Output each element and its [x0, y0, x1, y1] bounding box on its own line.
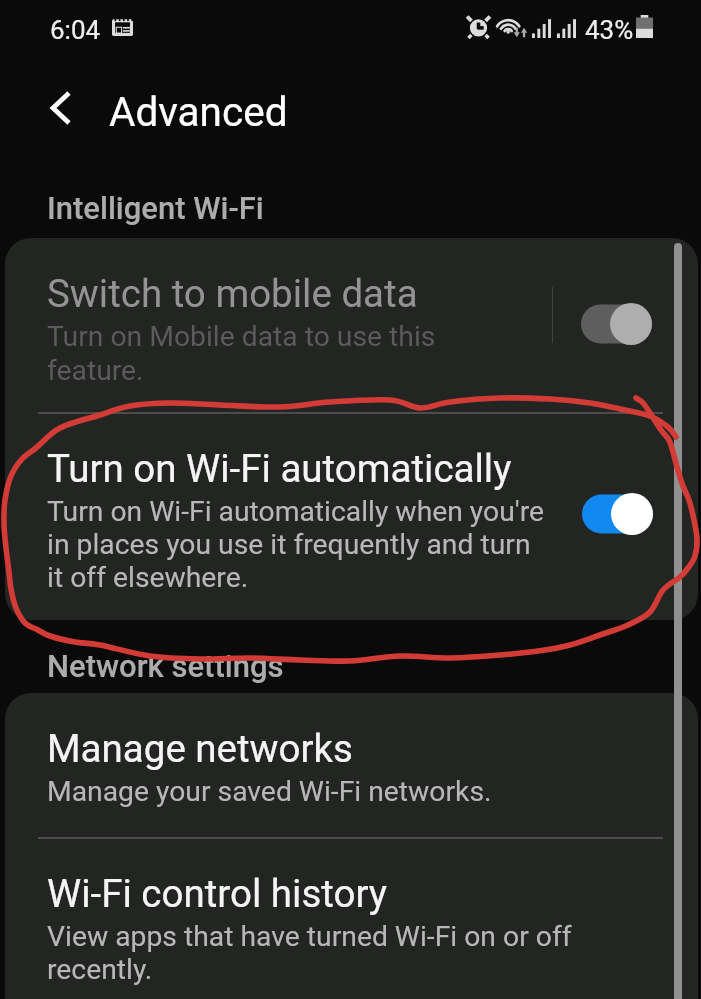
staticText: Network settings [47, 648, 284, 684]
staticText: Wi-Fi control history [47, 871, 388, 916]
button[interactable]: Back [35, 82, 87, 134]
staticText: Advanced [109, 88, 288, 135]
button[interactable]: Switch to mobile data [5, 238, 698, 412]
button[interactable]: Switch on [582, 493, 653, 535]
staticText: Intelligent Wi-Fi [47, 190, 264, 226]
staticText: Switch to mobile data [47, 271, 418, 316]
staticText: 43% [585, 15, 634, 45]
staticText: Turn on Mobile data to use this feature. [47, 320, 436, 387]
button[interactable]: Wi-Fi control history [5, 838, 698, 999]
staticText: Turn on Wi-Fi automatically when you're … [47, 495, 545, 594]
button[interactable]: Turn on Wi-Fi automatically [5, 413, 698, 620]
staticText: Manage networks [47, 726, 353, 771]
staticText: View apps that have turned Wi-Fi on or o… [47, 920, 572, 986]
staticText: Turn on Wi-Fi automatically [47, 446, 512, 491]
staticText: Manage your saved Wi-Fi networks. [47, 775, 492, 808]
staticText: 6:04 [50, 15, 101, 45]
button[interactable]: Switch on [581, 303, 652, 345]
button[interactable]: Manage networks [5, 693, 698, 837]
